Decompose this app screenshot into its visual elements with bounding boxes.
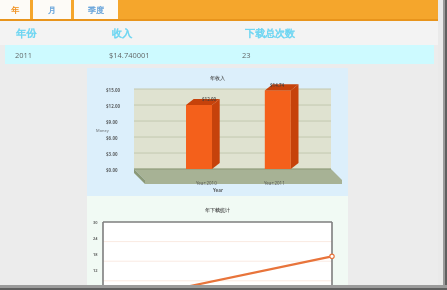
staticText: 下载总次数 — [245, 27, 295, 40]
staticText: 12 — [93, 268, 98, 273]
staticText: 年份 — [16, 27, 36, 40]
button[interactable]: 季度 — [74, 0, 118, 19]
staticText: Year:2010 — [196, 180, 217, 186]
staticText: Year:2011 — [264, 180, 285, 186]
staticText: 月 — [48, 5, 56, 15]
button[interactable]: 年下载统计 line chart — [87, 196, 348, 290]
button[interactable]: 年收入 bar chart — [87, 68, 348, 196]
button[interactable]: 月 — [33, 0, 71, 19]
staticText: Year — [213, 187, 223, 193]
staticText: $12.00 — [202, 96, 217, 102]
staticText: 年下载统计 — [205, 207, 230, 213]
staticText: 年 — [11, 5, 19, 15]
staticText: 30 — [93, 220, 98, 225]
staticText: $6.00 — [106, 135, 118, 141]
staticText: $15.00 — [106, 87, 121, 93]
staticText: $3.00 — [106, 151, 118, 157]
button[interactable]: 2011 — [5, 45, 434, 64]
staticText: 24 — [93, 236, 98, 241]
staticText: 18 — [93, 252, 98, 257]
staticText: 年收入 — [210, 75, 225, 81]
staticText: 23 — [242, 50, 251, 60]
staticText: $14.740001 — [109, 50, 150, 60]
staticText: $0.00 — [106, 167, 118, 173]
staticText: 收入 — [112, 27, 132, 40]
staticText: 2011 — [15, 50, 33, 60]
staticText: Money — [96, 128, 109, 133]
button[interactable]: 年 — [0, 0, 30, 19]
staticText: $14.74 — [270, 82, 285, 88]
staticText: $9.00 — [106, 119, 118, 125]
staticText: 季度 — [88, 5, 104, 15]
staticText: $12.00 — [106, 103, 121, 109]
